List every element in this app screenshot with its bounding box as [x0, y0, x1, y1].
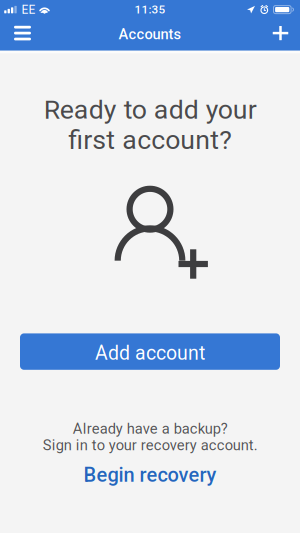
- button[interactable]: Add account: [20, 333, 280, 370]
- button[interactable]: Add account: [261, 19, 300, 47]
- staticText: Begin recovery: [83, 463, 216, 487]
- staticText: Add account: [95, 342, 205, 365]
- staticText: 11:35: [134, 3, 165, 16]
- staticText: EE: [21, 3, 35, 17]
- staticText: Already have a backup? Sign in to your r…: [42, 420, 257, 454]
- button[interactable]: Begin recovery: [73, 463, 226, 487]
- staticText: Ready to add your first account?: [43, 94, 256, 155]
- staticText: Accounts: [118, 26, 181, 43]
- button[interactable]: Menu: [0, 19, 45, 47]
